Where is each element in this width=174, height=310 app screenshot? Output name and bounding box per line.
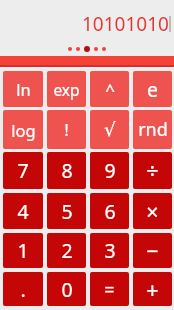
button[interactable]: exp	[47, 71, 86, 107]
staticText: .	[20, 276, 26, 303]
staticText: e	[147, 76, 158, 103]
button[interactable]: ln	[3, 71, 43, 107]
button[interactable]: 3	[90, 233, 129, 268]
staticText: exp	[53, 79, 80, 100]
button[interactable]: ^	[90, 71, 129, 107]
button[interactable]: 2	[47, 233, 86, 268]
staticText: ln	[16, 78, 31, 100]
button[interactable]: +	[133, 272, 172, 306]
button[interactable]: 8	[47, 152, 86, 189]
staticText: 8	[61, 157, 73, 184]
staticText: log	[11, 119, 36, 141]
button[interactable]: log	[3, 110, 43, 149]
button[interactable]: .	[3, 272, 43, 306]
button[interactable]: ÷	[133, 152, 172, 189]
staticText: 0	[61, 276, 73, 303]
staticText: 10101010	[82, 11, 169, 37]
button[interactable]: rnd	[133, 110, 172, 149]
button[interactable]: !	[47, 110, 86, 149]
button[interactable]: =	[90, 272, 129, 306]
button[interactable]: e	[133, 71, 172, 107]
staticText: √	[104, 119, 116, 141]
staticText: 6	[104, 198, 116, 225]
staticText: ^	[105, 78, 115, 101]
staticText: rnd	[138, 117, 168, 142]
staticText: +	[146, 275, 159, 304]
button[interactable]: ×	[133, 193, 172, 229]
button[interactable]: 6	[90, 193, 129, 229]
button[interactable]: 5	[47, 193, 86, 229]
button[interactable]: −	[133, 233, 172, 268]
button[interactable]: 4	[3, 193, 43, 229]
staticText: 2	[61, 237, 73, 264]
staticText: 9	[104, 157, 116, 184]
button[interactable]: 1	[3, 233, 43, 268]
staticText: 5	[61, 198, 73, 225]
staticText: ÷	[146, 156, 159, 185]
staticText: −	[146, 236, 159, 265]
staticText: 3	[104, 237, 116, 264]
staticText: 4	[17, 198, 29, 225]
staticText: ×	[146, 197, 159, 226]
button[interactable]: √	[90, 110, 129, 149]
button[interactable]: 0	[47, 272, 86, 306]
button[interactable]: 9	[90, 152, 129, 189]
staticText: 1	[17, 237, 29, 264]
button[interactable]: 7	[3, 152, 43, 189]
staticText: !	[64, 118, 69, 141]
staticText: 7	[17, 157, 29, 184]
staticText: =	[104, 277, 115, 302]
